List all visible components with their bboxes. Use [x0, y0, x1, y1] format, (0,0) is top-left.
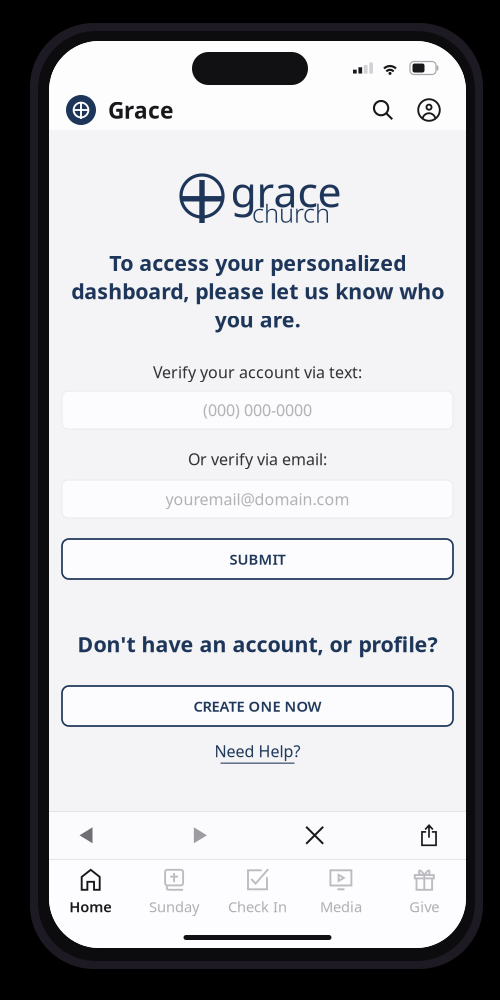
staticText: Need Help? — [214, 740, 300, 761]
staticText: Media — [320, 897, 362, 916]
button[interactable]: Sunday — [132, 869, 216, 921]
button[interactable]: Search — [360, 90, 406, 130]
staticText: CREATE ONE NOW — [193, 696, 321, 716]
staticText: Sunday — [149, 897, 199, 916]
staticText: Don't have an account, or profile? — [77, 630, 437, 658]
staticText: Verify your account via text: — [153, 361, 362, 383]
button[interactable]: (000) 000-0000 — [62, 391, 453, 429]
staticText: Grace — [108, 95, 174, 125]
staticText: grace — [230, 163, 341, 219]
staticText: Home — [69, 897, 112, 916]
button[interactable]: Give — [383, 869, 466, 921]
button[interactable]: CREATE ONE NOW — [62, 686, 453, 726]
staticText: Check In — [228, 897, 287, 916]
staticText: SUBMIT — [229, 549, 285, 569]
staticText: youremail@domain.com — [165, 488, 349, 510]
button[interactable]: Need Help? — [49, 741, 466, 763]
button[interactable]: Account — [406, 90, 452, 130]
staticText: To access your personalized dashboard, p… — [71, 248, 444, 333]
staticText: Give — [409, 897, 439, 916]
button[interactable]: youremail@domain.com — [62, 480, 453, 518]
button[interactable]: Home — [49, 869, 132, 921]
button[interactable]: Check In — [216, 869, 299, 921]
button[interactable]: Close — [279, 812, 351, 859]
staticText: (000) 000-0000 — [203, 399, 312, 421]
button[interactable]: SUBMIT — [62, 539, 453, 579]
button[interactable]: Share — [393, 812, 465, 859]
staticText: church — [252, 196, 330, 230]
button[interactable]: Forward — [164, 812, 236, 859]
button[interactable]: Back — [50, 812, 122, 859]
button[interactable]: Media — [299, 869, 383, 921]
button[interactable]: Grace — [49, 91, 174, 129]
staticText: Or verify via email: — [188, 448, 327, 470]
